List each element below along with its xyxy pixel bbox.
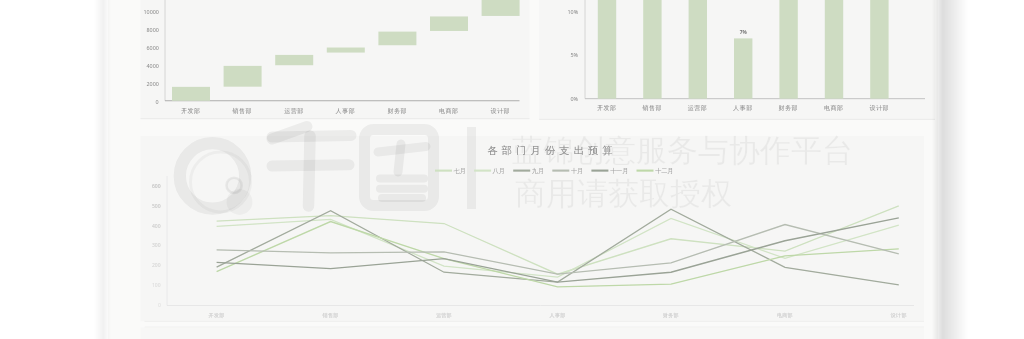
button[interactable] [0, 0, 1024, 339]
